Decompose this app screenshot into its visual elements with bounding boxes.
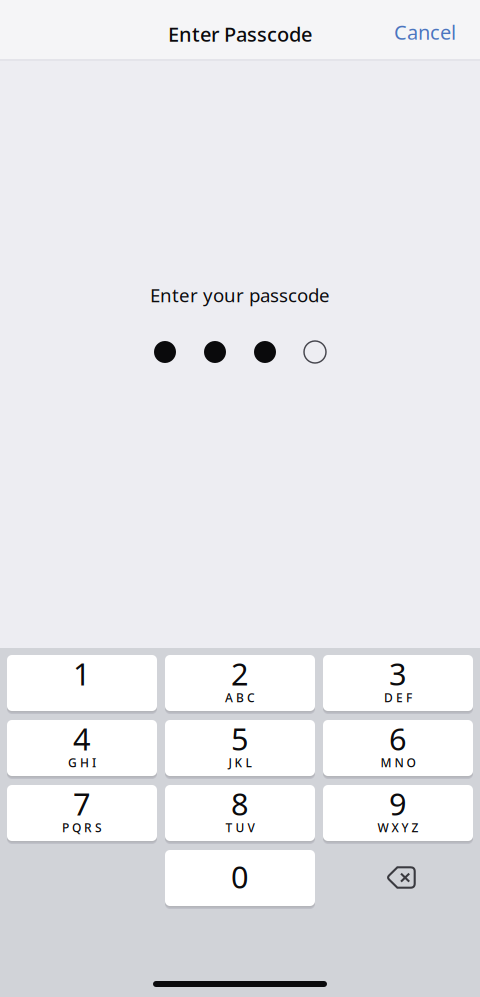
staticText: Enter your passcode: [150, 283, 330, 307]
staticText: 7: [73, 783, 91, 824]
staticText: M N O: [380, 754, 415, 770]
staticText: 8: [231, 783, 249, 824]
button[interactable]: 5: [165, 720, 315, 776]
staticText: 0: [231, 856, 249, 897]
button[interactable]: Cancel: [376, 3, 480, 61]
staticText: 5: [231, 718, 249, 759]
staticText: P Q R S: [62, 819, 102, 835]
button[interactable]: 0: [165, 850, 315, 906]
staticText: Enter Passcode: [168, 21, 312, 47]
staticText: 2: [231, 653, 249, 694]
button[interactable]: 6: [323, 720, 473, 776]
staticText: 1: [73, 653, 91, 694]
staticText: D E F: [384, 689, 412, 705]
staticText: W X Y Z: [377, 819, 418, 835]
staticText: 6: [389, 718, 407, 759]
button[interactable]: 7: [7, 785, 157, 841]
staticText: J K L: [228, 754, 251, 770]
button[interactable]: 1: [7, 655, 157, 711]
staticText: 9: [389, 783, 407, 824]
staticText: 3: [389, 653, 407, 694]
staticText: A B C: [225, 689, 255, 705]
button[interactable]: 9: [323, 785, 473, 841]
staticText: 4: [73, 718, 91, 759]
staticText: Cancel: [394, 19, 456, 45]
button[interactable]: 3: [323, 655, 473, 711]
button[interactable]: 2: [165, 655, 315, 711]
button[interactable]: 8: [165, 785, 315, 841]
button[interactable]: Delete: [323, 850, 473, 906]
staticText: G H I: [68, 754, 96, 770]
button[interactable]: 4: [7, 720, 157, 776]
staticText: T U V: [225, 819, 254, 835]
